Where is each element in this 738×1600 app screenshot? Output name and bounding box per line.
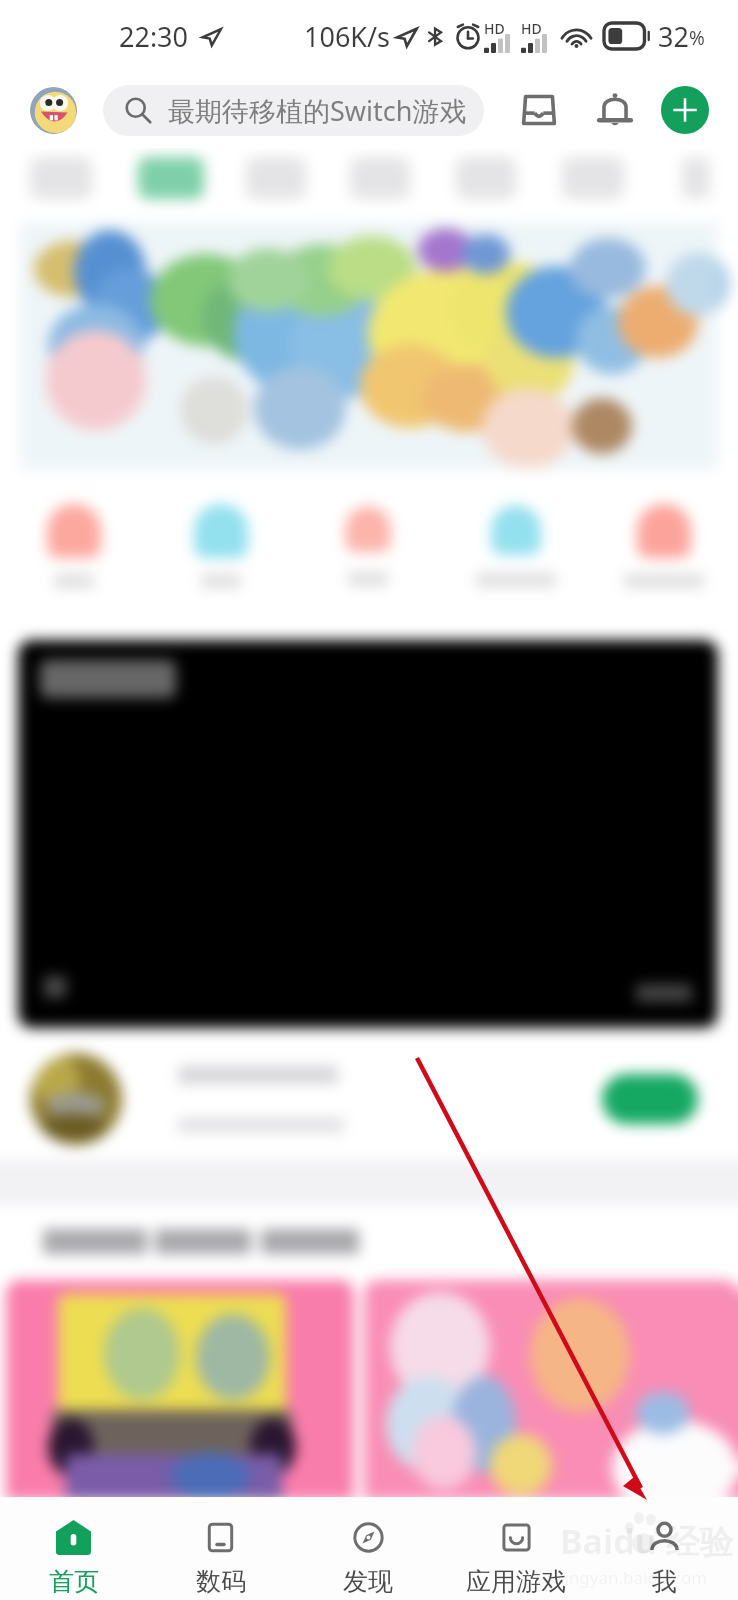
button[interactable]: [442, 470, 590, 616]
staticText: %: [689, 25, 705, 51]
staticText: 22:30: [119, 18, 189, 55]
staticText: 我: [652, 1566, 677, 1597]
button[interactable]: 应用游戏: [442, 1497, 590, 1600]
button[interactable]: 首页: [0, 1497, 147, 1600]
staticText: HD: [484, 19, 505, 38]
button[interactable]: Profile: [30, 87, 77, 134]
staticText: 发现: [343, 1566, 393, 1597]
button[interactable]: Add: [661, 86, 709, 134]
button[interactable]: Inbox: [515, 86, 563, 134]
button[interactable]: [18, 640, 718, 1028]
button[interactable]: Notifications: [591, 86, 639, 134]
button[interactable]: [30, 1053, 122, 1145]
button[interactable]: [147, 470, 294, 616]
button[interactable]: 数码: [147, 1497, 294, 1600]
button[interactable]: [0, 470, 147, 616]
button[interactable]: 发现: [294, 1497, 442, 1600]
staticText: jingyan.baidu.com: [560, 1566, 708, 1589]
staticText: 数码: [196, 1566, 246, 1597]
button[interactable]: [602, 1074, 698, 1124]
button[interactable]: [590, 470, 738, 616]
button[interactable]: 我: [590, 1497, 738, 1600]
staticText: Baidu 经验: [560, 1518, 734, 1564]
staticText: 首页: [49, 1566, 99, 1597]
staticText: 应用游戏: [466, 1566, 566, 1597]
staticText: HD: [521, 19, 542, 38]
staticText: 106K/s: [304, 18, 391, 55]
staticText: 最期待移植的Switch游戏: [168, 92, 467, 129]
staticText: 32: [658, 18, 689, 55]
button[interactable]: [294, 470, 442, 616]
button[interactable]: 最期待移植的Switch游戏: [103, 85, 484, 136]
